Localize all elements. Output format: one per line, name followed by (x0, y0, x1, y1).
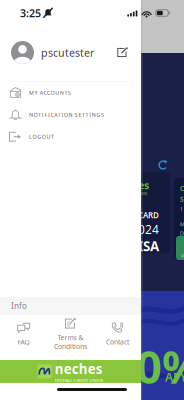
staticText: CARD (138, 210, 159, 220)
staticText: 3:25 (20, 6, 41, 20)
staticText: Conditions (54, 342, 87, 351)
staticText: pscutester (41, 45, 94, 60)
staticText: S (180, 195, 184, 204)
staticText: MY ACCOUNTS (29, 89, 71, 96)
staticText: ISA (138, 237, 159, 255)
staticText: D (180, 230, 184, 237)
staticText: UNL (181, 253, 184, 258)
staticText: FAQ (17, 338, 29, 346)
button[interactable]: MY ACCOUNTS (0, 82, 141, 104)
staticText: Terms & (57, 333, 83, 342)
button[interactable]: LOGOUT (0, 126, 141, 148)
button[interactable]: NOTIFICATION SETTINGS (0, 104, 141, 126)
button[interactable]: pscutester (0, 31, 141, 74)
button[interactable]: Terms & (47, 316, 94, 352)
staticText: 1 (180, 206, 183, 213)
button[interactable]: Contact (94, 316, 141, 352)
staticText: FEDERAL CREDIT UNION (55, 378, 103, 383)
staticText: neches (55, 360, 103, 378)
staticText: NOTIFICATION SETTINGS (29, 111, 104, 118)
staticText: Info (11, 301, 27, 311)
staticText: es (138, 178, 149, 192)
staticText: LOGOUT (29, 133, 54, 140)
staticText: 024 (138, 221, 159, 237)
staticText: Contact (106, 338, 129, 346)
button[interactable]: FAQ (0, 316, 47, 352)
staticText: APY (165, 369, 184, 385)
staticText: M (180, 221, 184, 228)
staticText: 0% (136, 336, 184, 396)
staticText: UNION (138, 192, 147, 196)
staticText: C (180, 184, 184, 193)
